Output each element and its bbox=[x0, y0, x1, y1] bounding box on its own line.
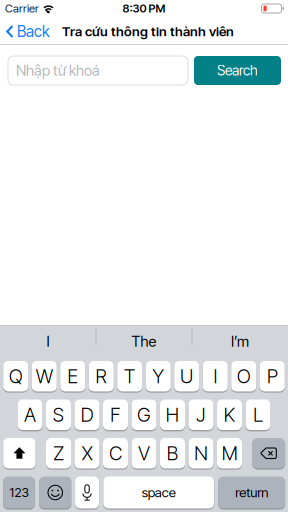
button[interactable]: Search bbox=[194, 56, 281, 85]
button[interactable]: G bbox=[131, 399, 156, 430]
staticText: The bbox=[131, 333, 156, 350]
staticText: T bbox=[124, 365, 136, 388]
staticText: A bbox=[24, 403, 36, 426]
staticText: D bbox=[80, 403, 93, 426]
button[interactable]: J bbox=[188, 399, 213, 430]
button[interactable]: Delete bbox=[252, 438, 285, 468]
button[interactable]: K bbox=[217, 399, 242, 430]
button[interactable]: I bbox=[203, 361, 228, 391]
staticText: N bbox=[194, 442, 208, 465]
staticText: C bbox=[109, 442, 122, 465]
staticText: S bbox=[52, 403, 64, 426]
button[interactable]: 123 bbox=[3, 476, 35, 508]
button[interactable]: Y bbox=[146, 361, 171, 391]
button[interactable]: Shift bbox=[3, 438, 35, 468]
staticText: G bbox=[137, 403, 151, 426]
staticText: W bbox=[36, 365, 53, 388]
staticText: Y bbox=[152, 365, 164, 388]
staticText: I’m bbox=[231, 333, 249, 350]
staticText: H bbox=[165, 403, 179, 426]
staticText: 8:30 PM bbox=[122, 2, 165, 15]
staticText: Q bbox=[9, 365, 23, 388]
button[interactable]: W bbox=[32, 361, 57, 391]
button[interactable]: B bbox=[160, 438, 185, 468]
staticText: Back bbox=[17, 22, 50, 41]
button[interactable]: A bbox=[17, 399, 42, 430]
button[interactable]: E bbox=[60, 361, 85, 391]
staticText: X bbox=[81, 442, 92, 465]
staticText: M bbox=[221, 442, 237, 465]
staticText: Tra cứu thông tin thành viên bbox=[62, 23, 234, 39]
button[interactable]: U bbox=[174, 361, 199, 391]
button[interactable]: O bbox=[231, 361, 256, 391]
button[interactable]: C bbox=[103, 438, 128, 468]
staticText: Carrier bbox=[5, 2, 39, 15]
button[interactable]: return bbox=[218, 476, 285, 508]
staticText: return bbox=[235, 484, 268, 500]
button[interactable]: N bbox=[188, 438, 213, 468]
staticText: P bbox=[267, 365, 278, 388]
staticText: Nhập từ khoá bbox=[16, 62, 100, 79]
button[interactable]: H bbox=[160, 399, 185, 430]
staticText: B bbox=[166, 442, 178, 465]
button[interactable]: R bbox=[89, 361, 114, 391]
button[interactable]: S bbox=[46, 399, 71, 430]
staticText: Z bbox=[53, 442, 64, 465]
staticText: O bbox=[237, 365, 251, 388]
staticText: U bbox=[180, 365, 194, 388]
button[interactable]: I’m bbox=[192, 328, 288, 354]
button[interactable]: Z bbox=[46, 438, 71, 468]
button[interactable]: X bbox=[74, 438, 99, 468]
staticText: J bbox=[196, 403, 206, 426]
button[interactable]: Q bbox=[3, 361, 28, 391]
staticText: 123 bbox=[9, 485, 28, 500]
staticText: E bbox=[67, 365, 78, 388]
staticText: K bbox=[223, 403, 235, 426]
button[interactable]: L bbox=[245, 399, 270, 430]
button[interactable]: Dictate bbox=[75, 476, 99, 508]
button[interactable]: Back bbox=[0, 22, 50, 41]
staticText: I bbox=[213, 365, 217, 388]
button[interactable]: T bbox=[117, 361, 142, 391]
staticText: L bbox=[253, 403, 263, 426]
button[interactable]: V bbox=[131, 438, 156, 468]
staticText: space bbox=[142, 484, 176, 500]
button[interactable]: The bbox=[96, 328, 192, 354]
button[interactable]: Emoji bbox=[39, 476, 71, 508]
button[interactable]: P bbox=[260, 361, 285, 391]
button[interactable]: F bbox=[103, 399, 128, 430]
button[interactable]: D bbox=[74, 399, 99, 430]
button[interactable]: I bbox=[0, 328, 96, 354]
staticText: R bbox=[95, 365, 107, 388]
staticText: F bbox=[110, 403, 121, 426]
button[interactable]: M bbox=[217, 438, 242, 468]
staticText: Search bbox=[217, 62, 258, 79]
staticText: V bbox=[138, 442, 150, 465]
button[interactable]: space bbox=[103, 476, 214, 508]
staticText: I bbox=[46, 333, 49, 350]
button[interactable]: Nhập từ khoá bbox=[8, 56, 188, 85]
